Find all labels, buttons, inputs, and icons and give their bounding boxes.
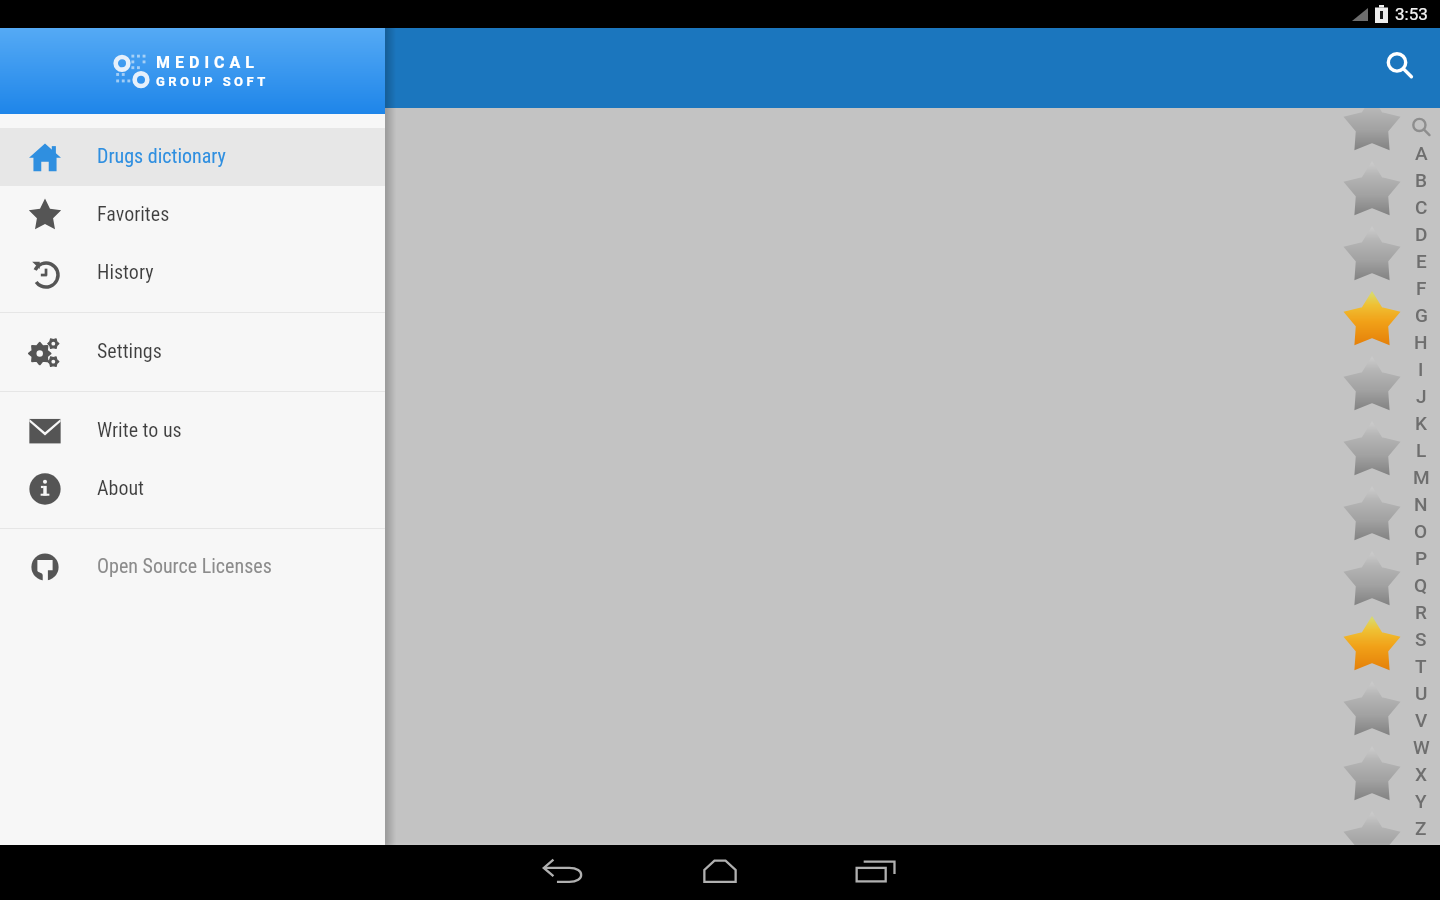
button[interactable]: Back — [486, 845, 642, 900]
staticText: M — [1413, 466, 1430, 488]
staticText: D — [1415, 223, 1428, 245]
staticText: L — [1416, 439, 1427, 461]
staticText: Settings — [97, 339, 162, 362]
staticText: X — [1415, 763, 1428, 785]
staticText: V — [1415, 709, 1428, 731]
button[interactable]: Recent apps — [798, 845, 954, 900]
staticText: Y — [1415, 790, 1427, 812]
button[interactable]: History — [0, 244, 385, 302]
staticText: Q — [1414, 574, 1428, 596]
staticText: O — [1414, 520, 1428, 542]
staticText: P — [1415, 547, 1428, 569]
staticText: C — [1415, 196, 1428, 218]
staticText: Favorites — [97, 202, 170, 225]
staticText: F — [1416, 277, 1427, 299]
staticText: T — [1415, 655, 1427, 677]
staticText: Z — [1415, 817, 1427, 839]
staticText: Write to us — [97, 418, 182, 441]
staticText: H — [1414, 331, 1428, 353]
staticText: K — [1415, 412, 1427, 434]
staticText: U — [1415, 682, 1428, 704]
staticText: GROUP SOFT — [156, 74, 269, 89]
button[interactable]: Search — [1360, 28, 1440, 108]
staticText: W — [1413, 736, 1430, 758]
staticText: A — [1415, 142, 1428, 164]
staticText: E — [1416, 250, 1427, 272]
button[interactable]: Open Source Licenses — [0, 538, 385, 596]
staticText: N — [1414, 493, 1428, 515]
button[interactable]: Alphabet index — [1406, 112, 1436, 841]
button[interactable]: Favorites — [0, 186, 385, 244]
staticText: 3:53 — [1395, 4, 1428, 24]
staticText: R — [1415, 601, 1427, 623]
staticText: MEDICAL — [156, 53, 260, 72]
staticText: History — [97, 260, 154, 283]
staticText: J — [1416, 385, 1427, 407]
button[interactable]: Write to us — [0, 402, 385, 460]
button[interactable]: About — [0, 460, 385, 518]
button[interactable]: Home — [642, 845, 798, 900]
staticText: Drugs dictionary — [97, 144, 226, 167]
staticText: Open Source Licenses — [97, 554, 272, 577]
staticText: I — [1418, 358, 1424, 380]
staticText: S — [1415, 628, 1427, 650]
staticText: About — [97, 476, 145, 499]
button[interactable]: Drugs dictionary — [0, 128, 385, 186]
staticText: B — [1415, 169, 1427, 191]
staticText: G — [1415, 304, 1428, 326]
button[interactable]: Settings — [0, 323, 385, 381]
